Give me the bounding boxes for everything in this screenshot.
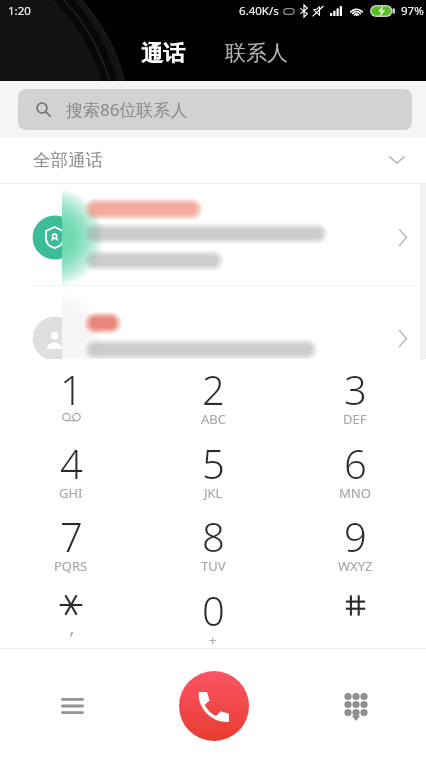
staticText: 5 [202, 436, 225, 480]
staticText: PQRS [54, 557, 88, 575]
button[interactable]: 6 [284, 430, 426, 502]
button[interactable] [0, 577, 142, 649]
button[interactable]: 搜索86位联系人 [18, 89, 412, 130]
staticText: 6.40K/s [239, 3, 279, 19]
button[interactable]: 7 [0, 503, 142, 575]
staticText: 1:20 [8, 3, 31, 19]
staticText: 0 [202, 583, 225, 627]
button[interactable]: 5 [142, 430, 284, 502]
staticText: 97% [401, 3, 424, 19]
staticText: DEF [343, 410, 367, 428]
button[interactable]: 9 [284, 503, 426, 575]
staticText: + [209, 631, 217, 649]
button[interactable]: 0 [142, 577, 284, 649]
staticText: GHI [59, 484, 83, 502]
staticText: 搜索86位联系人 [66, 98, 188, 121]
button[interactable]: 3 [284, 356, 426, 428]
staticText: 9 [344, 509, 367, 553]
button[interactable]: 全部通话 [0, 137, 426, 183]
button[interactable]: Call [179, 671, 249, 741]
button[interactable]: Hide keypad [329, 679, 383, 733]
staticText: 8 [202, 509, 225, 553]
button[interactable] [284, 577, 426, 649]
button[interactable]: 4 [0, 430, 142, 502]
button[interactable] [0, 190, 426, 285]
staticText: ABC [201, 410, 226, 428]
button[interactable] [0, 291, 426, 386]
staticText: 全部通话 [33, 149, 103, 171]
staticText: 3 [344, 362, 367, 406]
staticText: 通话 [141, 40, 185, 68]
staticText: 7 [60, 509, 83, 553]
staticText: TUV [201, 557, 226, 575]
staticText: 6 [344, 436, 367, 480]
button[interactable]: 2 [142, 356, 284, 428]
staticText: JKL [204, 484, 223, 502]
staticText: MNO [339, 484, 371, 502]
button[interactable]: 联系人 [225, 40, 288, 66]
staticText: 2 [202, 362, 225, 406]
staticText: WXYZ [338, 557, 373, 575]
button[interactable]: 1 [0, 356, 142, 428]
staticText: 4 [60, 436, 83, 480]
button[interactable]: 8 [142, 503, 284, 575]
button[interactable]: 通话 [141, 40, 185, 68]
button[interactable]: Menu [45, 679, 99, 733]
staticText: 1 [60, 362, 83, 406]
staticText: 联系人 [225, 40, 288, 66]
